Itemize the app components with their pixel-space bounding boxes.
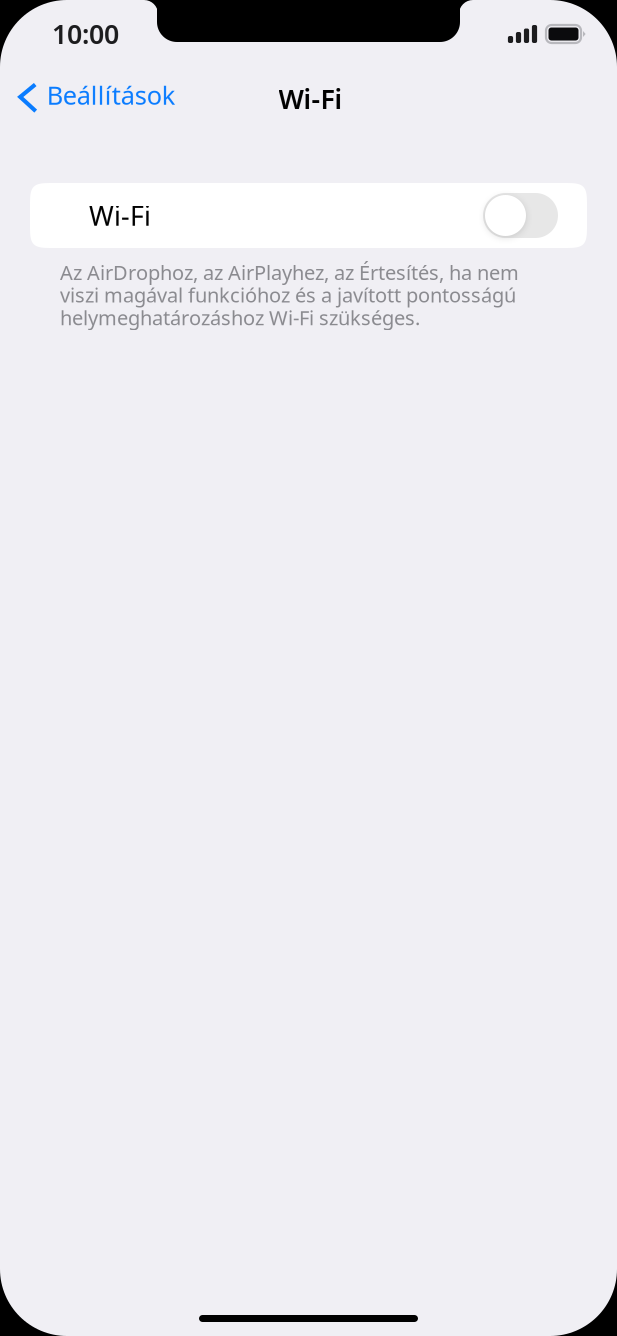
staticText: helymeghatározáshoz Wi-Fi szükséges.: [60, 304, 420, 331]
button[interactable]: Wi-Fi: [30, 183, 587, 248]
staticText: viszi magával funkcióhoz és a javított p…: [60, 282, 516, 308]
staticText: 10:00: [52, 16, 119, 51]
staticText: Beállítások: [47, 78, 176, 112]
staticText: Az AirDrophoz, az AirPlayhez, az Értesít…: [60, 259, 519, 286]
staticText: Wi-Fi: [89, 198, 151, 233]
button[interactable]: Beállítások: [0, 68, 192, 122]
staticText: Wi-Fi: [278, 81, 342, 116]
